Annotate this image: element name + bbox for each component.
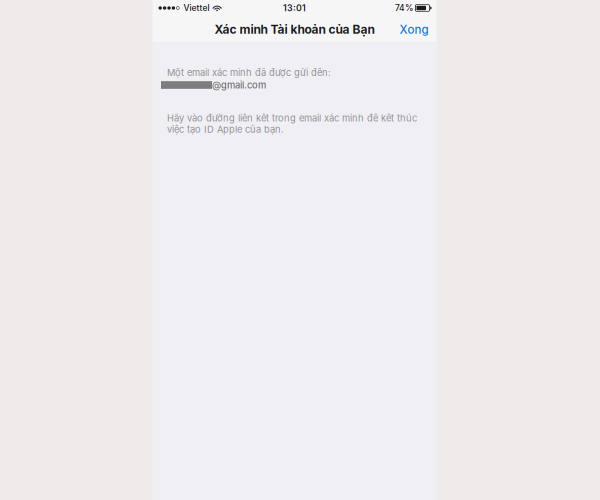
staticText: 74% <box>395 3 413 13</box>
staticText: Xác minh Tài khoản của Bạn <box>214 22 374 37</box>
staticText: Xong <box>399 23 428 36</box>
staticText: Viettel <box>183 3 209 13</box>
staticText: @gmail.com <box>212 79 266 91</box>
staticText: Hãy vào đường liên kết trong email xác m… <box>167 112 417 135</box>
staticText: Một email xác minh đã được gửi đến: <box>167 67 331 78</box>
button[interactable]: Xong <box>391 16 436 43</box>
staticText: 13:01 <box>283 3 306 13</box>
